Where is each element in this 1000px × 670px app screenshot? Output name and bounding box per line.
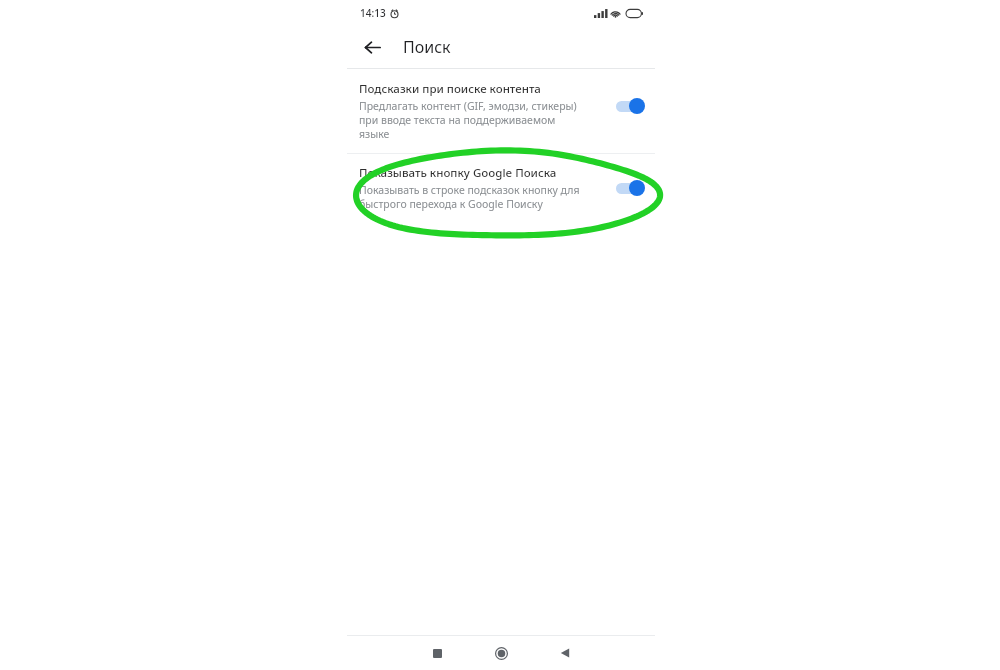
- staticText: Предлагать контент (GIF, эмодзи, стикеры…: [359, 99, 577, 113]
- button[interactable]: Подсказки при поиске контента: [347, 79, 655, 143]
- staticText: Показывать кнопку Google Поиска: [359, 165, 557, 181]
- button[interactable]: Показывать кнопку Google Поиска: [347, 163, 655, 213]
- staticText: при вводе текста на поддерживаемом: [359, 113, 556, 127]
- staticText: Подсказки при поиске контента: [359, 81, 541, 97]
- button[interactable]: Переключатель: [615, 180, 645, 196]
- button[interactable]: Обзор: [419, 636, 455, 670]
- button[interactable]: Главный экран: [483, 636, 519, 670]
- staticText: языке: [359, 127, 390, 141]
- button[interactable]: Переключатель: [615, 98, 645, 114]
- staticText: Показывать в строке подсказок кнопку для: [359, 183, 580, 197]
- staticText: быстрого перехода к Google Поиску: [359, 197, 543, 211]
- staticText: Поиск: [403, 36, 451, 58]
- button[interactable]: Назад: [547, 636, 583, 670]
- staticText: 14:13: [360, 6, 386, 20]
- button[interactable]: Назад: [356, 31, 388, 63]
